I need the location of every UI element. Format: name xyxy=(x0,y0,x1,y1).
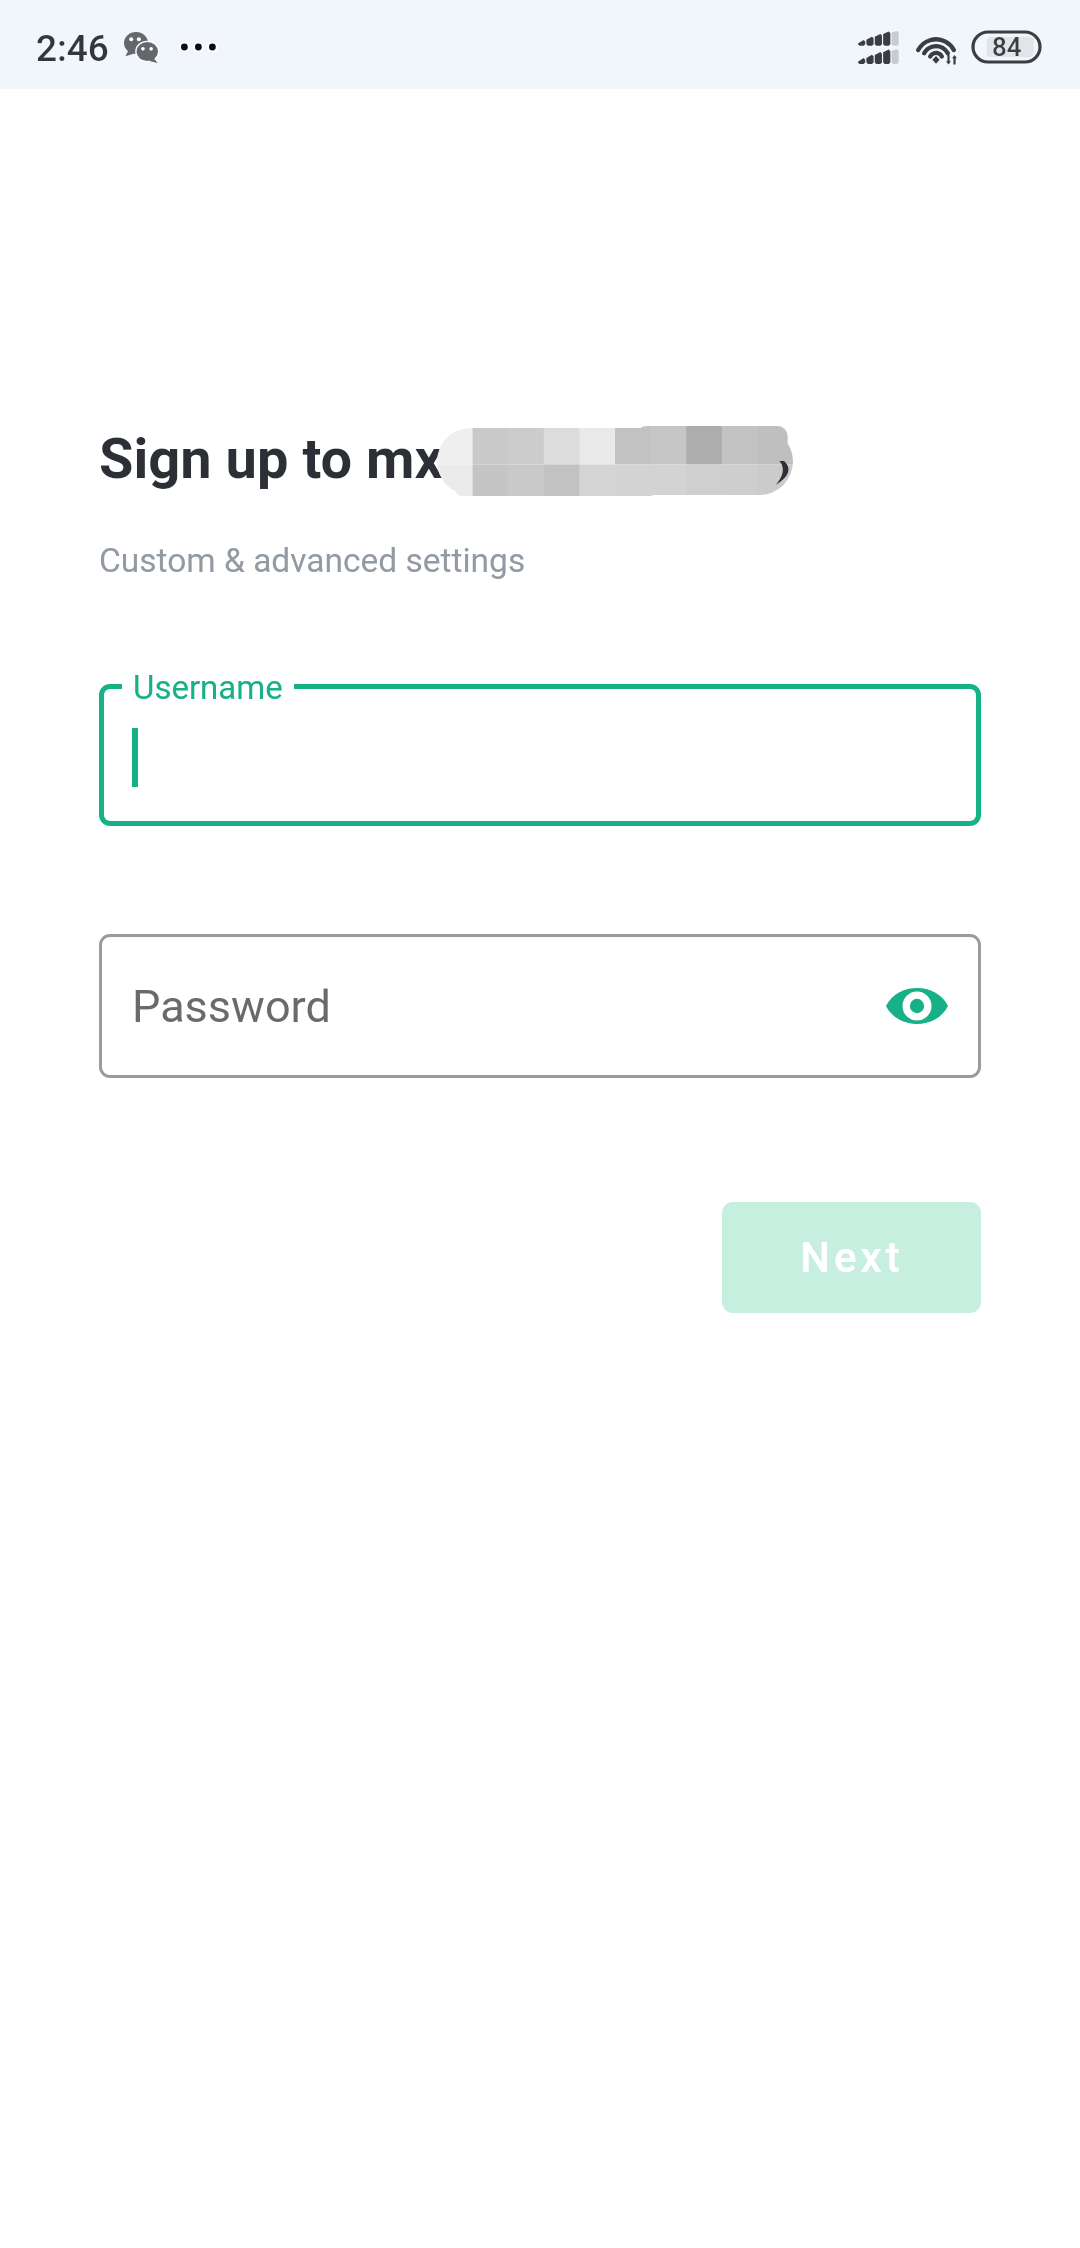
button[interactable]: Password xyxy=(99,934,981,1078)
staticText: Custom & advanced settings xyxy=(99,541,526,580)
other: WeChat notification xyxy=(124,32,158,61)
staticText: 2:46 xyxy=(36,27,109,70)
other: Mobile signal xyxy=(858,31,899,64)
staticText: Next xyxy=(800,1233,904,1282)
staticText: Username xyxy=(133,668,283,707)
staticText: Password xyxy=(132,980,331,1033)
other: More notifications xyxy=(181,39,217,55)
button[interactable]: Show password xyxy=(881,970,953,1042)
other: Wi-Fi xyxy=(913,30,959,66)
button[interactable]: Next xyxy=(722,1202,981,1313)
button[interactable]: Username xyxy=(99,684,981,826)
staticText: Sign up to mx xyxy=(99,426,444,492)
staticText: 84 xyxy=(992,32,1022,62)
other: Battery 84 percent xyxy=(973,32,1040,62)
